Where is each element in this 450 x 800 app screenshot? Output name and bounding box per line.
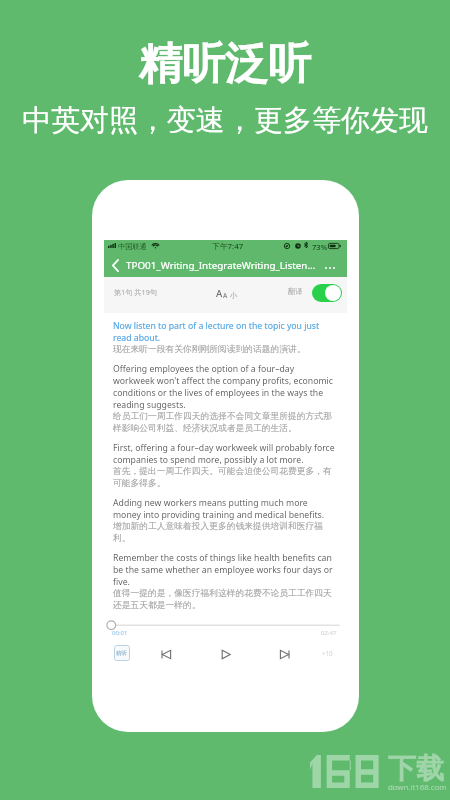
staticText: Remember the costs of things like health… <box>113 551 335 587</box>
staticText: 00:01 <box>112 629 128 637</box>
button[interactable]: Translation toggle <box>312 284 342 302</box>
button[interactable]: 精听 <box>114 645 130 661</box>
staticText: 给员工们一周工作四天的选择不会同文章里所提的方式那样影响公司利益、经济状况或者是… <box>113 410 335 434</box>
staticText: Offering employees the option of a four–… <box>113 362 335 410</box>
staticText: 中国联通 <box>118 242 147 251</box>
staticText: A <box>216 287 223 300</box>
staticText: Now listen to part of a lecture on the t… <box>113 319 335 343</box>
staticText: A <box>223 291 228 300</box>
button[interactable]: Forward 10 seconds <box>316 646 338 660</box>
staticText: 现在来听一段有关你刚刚所阅读到的话题的演讲。 <box>113 343 306 355</box>
staticText: 小 <box>230 291 238 300</box>
staticText: 73% <box>312 242 328 252</box>
button[interactable]: A <box>216 280 238 300</box>
staticText: 精听泛听 <box>139 37 311 91</box>
staticText: TPO01_Writing_IntegrateWriting_Listen... <box>126 259 316 272</box>
staticText: 精听 <box>116 650 128 657</box>
staticText: 中英对照，变速，更多等你发现 <box>22 102 428 139</box>
button[interactable]: Next <box>276 646 294 662</box>
staticText: 下载 <box>388 751 444 786</box>
staticText: First, offering a four–day workweek will… <box>113 441 335 465</box>
staticText: Adding new workers means putting much mo… <box>113 496 335 520</box>
staticText: 首先，提出一周工作四天。可能会迫使公司花费更多，有可能多得多。 <box>113 465 335 489</box>
staticText: 值得一提的是，像医疗福利这样的花费不论员工工作四天还是五天都是一样的。 <box>113 587 335 611</box>
staticText: 下午7:47 <box>212 241 244 252</box>
button[interactable]: Back <box>107 258 125 277</box>
staticText: +10 <box>322 649 333 657</box>
button[interactable]: Play <box>217 646 235 662</box>
staticText: 第1句 共19句 <box>114 287 157 297</box>
staticText: down.it168.com <box>388 782 447 793</box>
button[interactable]: Previous <box>157 646 175 662</box>
staticText: 02:47 <box>321 629 337 637</box>
staticText: 翻译 <box>288 287 303 296</box>
button[interactable]: More options <box>319 258 341 277</box>
staticText: 增加新的工人意味着投入更多的钱来提供培训和医疗福利。 <box>113 520 335 544</box>
